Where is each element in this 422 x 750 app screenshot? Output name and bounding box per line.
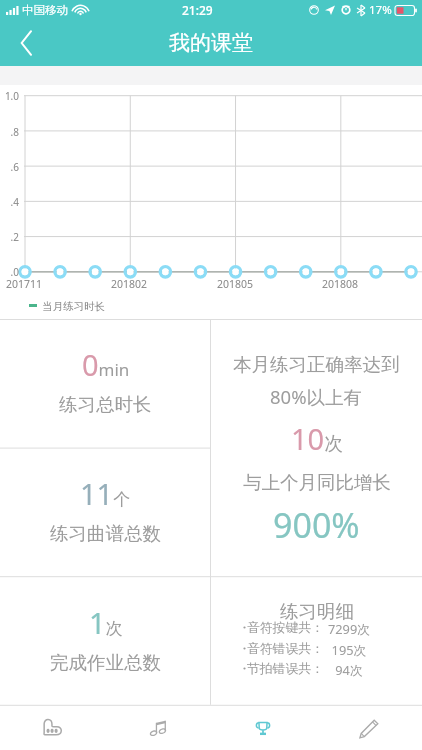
staticText: 我的课堂: [169, 30, 253, 56]
staticText: 201711: [0, 277, 48, 291]
staticText: 当月练习时长: [42, 300, 105, 313]
button[interactable]: Piano: [0, 706, 105, 750]
staticText: .4: [0, 195, 19, 209]
button[interactable]: Practice: [316, 706, 422, 750]
staticText: 节拍错误共：: [247, 661, 324, 677]
staticText: 80%以上有: [270, 384, 363, 409]
button[interactable]: 1次: [0, 577, 211, 706]
staticText: 练习曲谱总数: [50, 522, 161, 545]
button[interactable]: 练习明细: [211, 576, 422, 705]
button[interactable]: Achievements: [210, 706, 316, 750]
staticText: 练习明细: [280, 600, 354, 623]
staticText: 201802: [105, 277, 153, 291]
staticText: 900%: [273, 502, 360, 548]
staticText: 7299次: [319, 620, 379, 637]
staticText: 94次: [319, 661, 379, 678]
staticText: 中国移动: [22, 3, 68, 17]
staticText: 1次: [89, 603, 123, 642]
staticText: 与上个月同比增长: [243, 471, 391, 494]
staticText: 本月练习正确率达到: [233, 353, 400, 376]
button[interactable]: Songs: [105, 706, 210, 750]
staticText: 10次: [291, 419, 343, 458]
staticText: 1.0: [0, 89, 19, 103]
button[interactable]: Back: [0, 20, 52, 66]
staticText: 11个: [80, 474, 131, 513]
button[interactable]: 11个: [0, 448, 211, 577]
staticText: .6: [0, 160, 19, 174]
staticText: .2: [0, 230, 19, 244]
staticText: 17%: [369, 2, 392, 18]
staticText: .0: [0, 265, 19, 279]
staticText: 0min: [82, 345, 130, 384]
staticText: 201808: [316, 277, 364, 291]
staticText: 音符按键共：: [247, 620, 324, 636]
staticText: 201805: [211, 277, 259, 291]
button[interactable]: 本月练习正确率达到: [211, 319, 422, 576]
staticText: 195次: [319, 641, 379, 658]
staticText: 音符错误共：: [247, 641, 324, 657]
staticText: 完成作业总数: [50, 651, 161, 674]
button[interactable]: 0min: [0, 319, 211, 448]
staticText: 练习总时长: [59, 393, 152, 416]
staticText: .8: [0, 125, 19, 139]
staticText: 21:29: [182, 2, 213, 18]
